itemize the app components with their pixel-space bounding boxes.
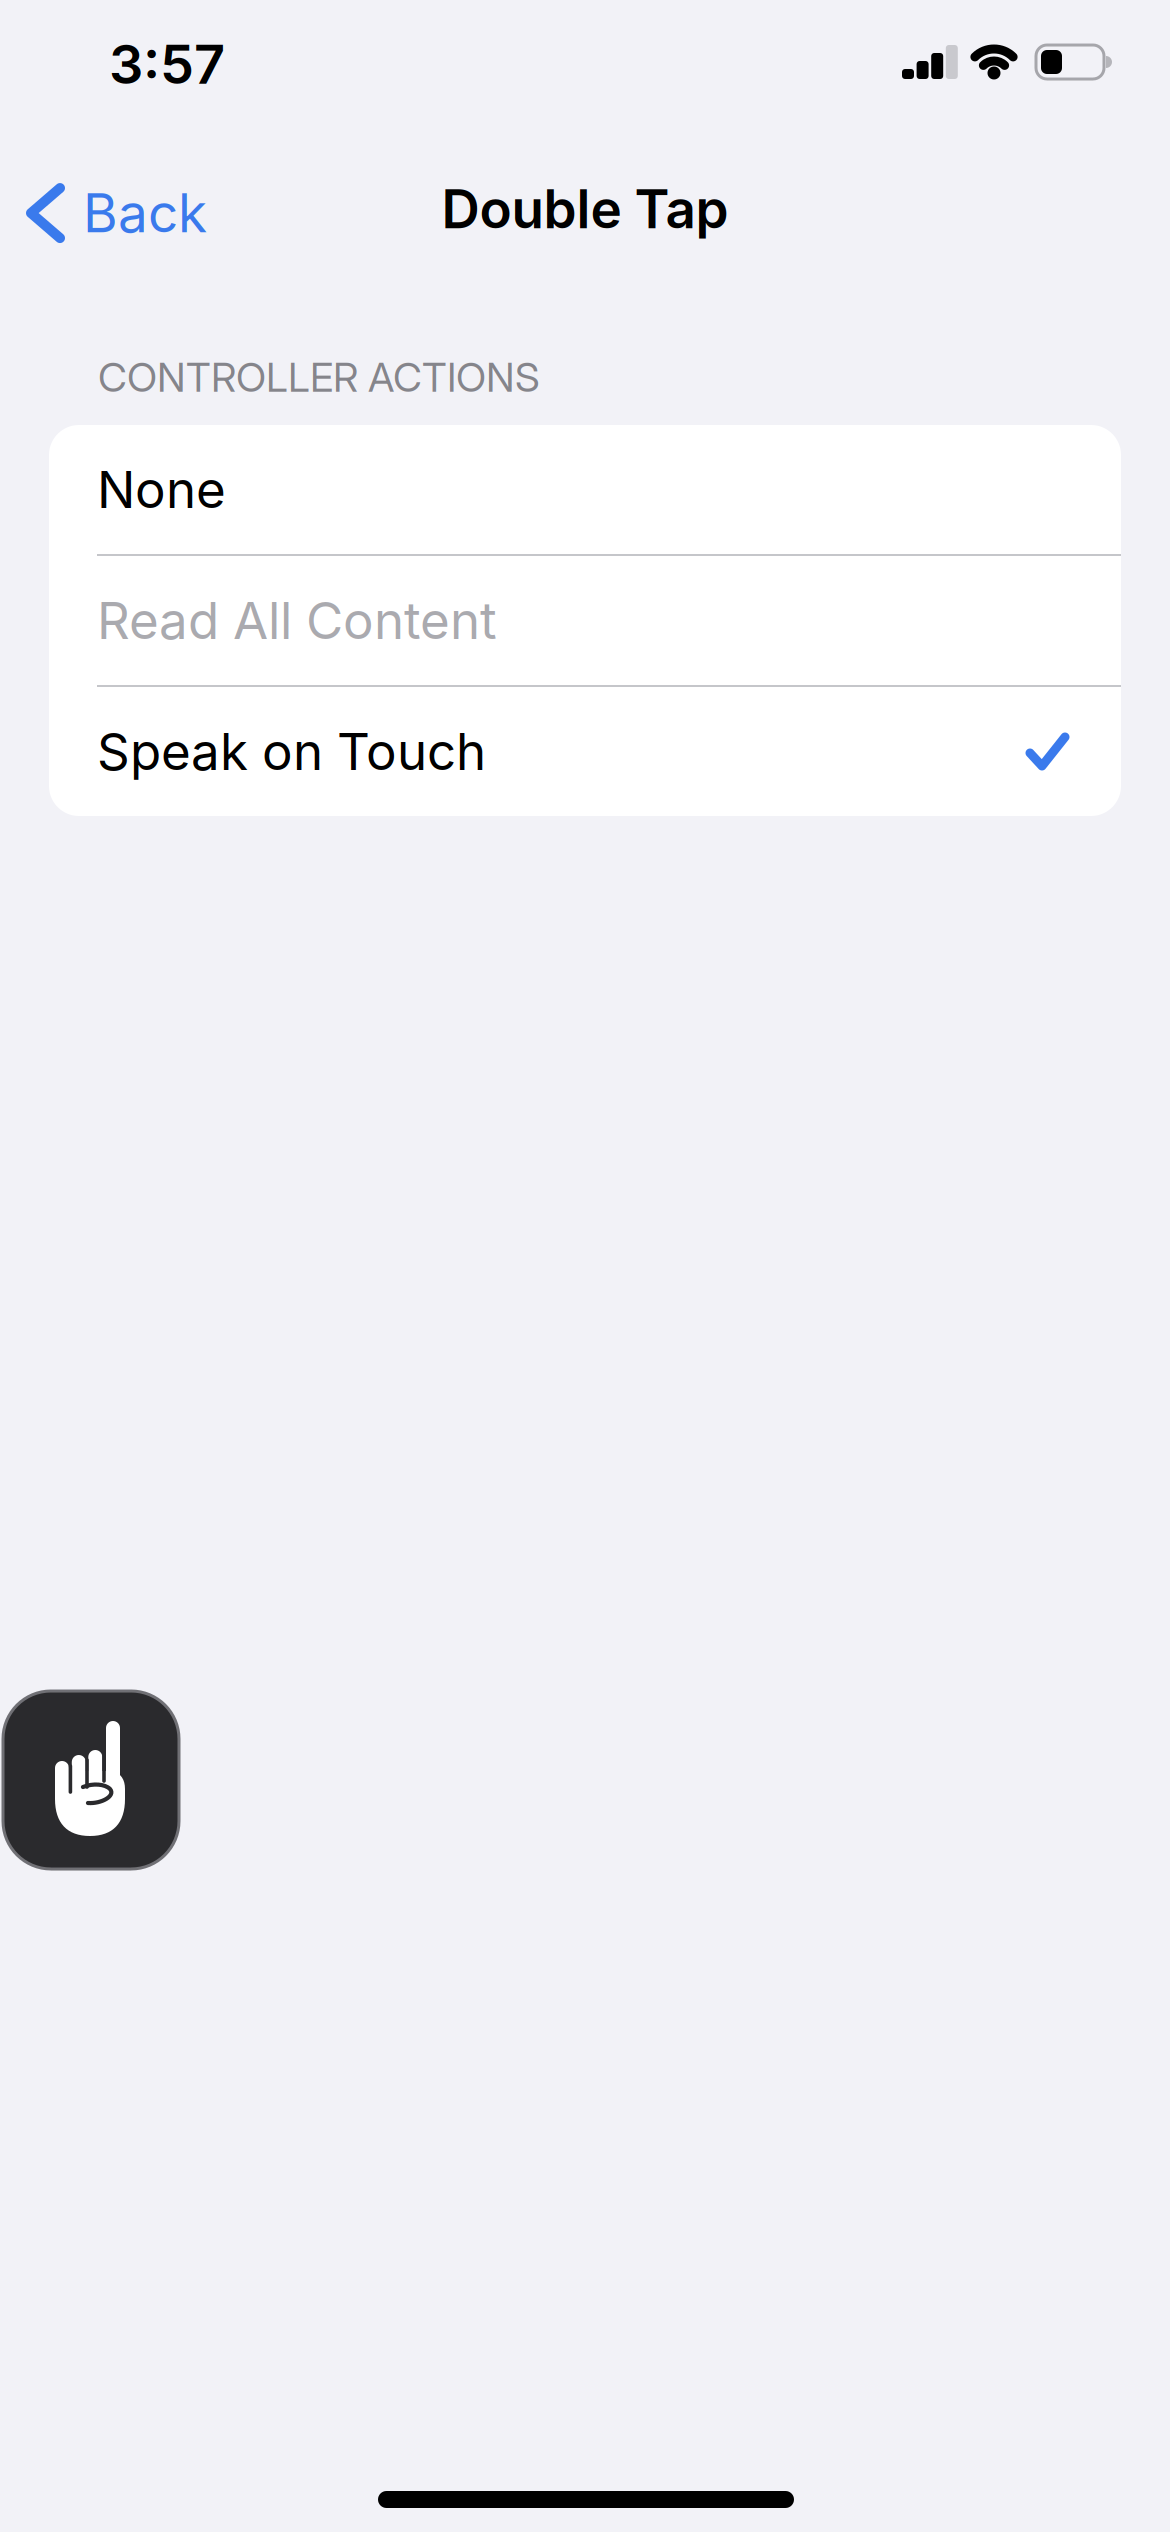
staticText: Speak on Touch (97, 721, 486, 782)
staticText: Back (83, 181, 207, 245)
staticText: Read All Content (97, 590, 497, 651)
button[interactable]: Speak on Touch controller (3, 1691, 179, 1869)
staticText: Double Tap (441, 177, 728, 241)
button[interactable]: Speak on Touch (49, 687, 1121, 816)
staticText: 3:57 (109, 31, 225, 97)
staticText: CONTROLLER ACTIONS (98, 353, 540, 401)
button[interactable]: None (49, 425, 1121, 554)
staticText: None (97, 459, 226, 520)
button[interactable]: Read All Content (49, 556, 1121, 685)
button[interactable]: Back (28, 181, 207, 245)
